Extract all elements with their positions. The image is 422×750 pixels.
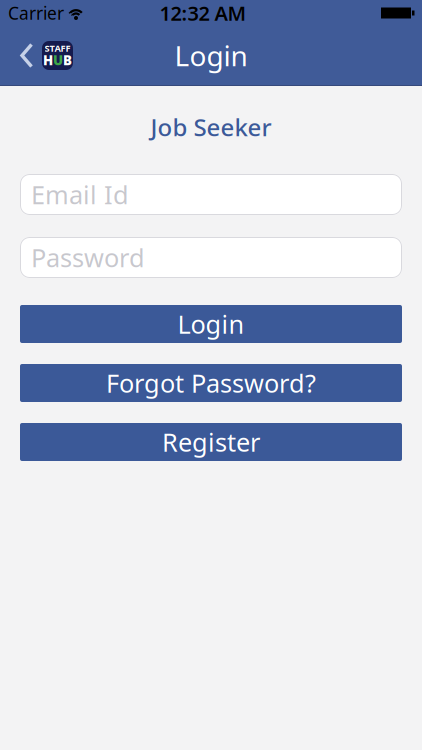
staticText: Register — [162, 425, 260, 459]
staticText: B — [63, 51, 72, 69]
staticText: H — [43, 51, 53, 69]
button[interactable]: STAFF — [0, 41, 73, 70]
staticText: Forgot Password? — [106, 366, 316, 400]
staticText: Password — [31, 241, 145, 274]
staticText: Email Id — [31, 178, 129, 211]
button[interactable]: Email Id — [20, 174, 402, 215]
button[interactable]: Password — [20, 237, 402, 278]
staticText: 12:32 AM — [159, 0, 246, 26]
button[interactable]: Forgot Password? — [20, 364, 402, 402]
button[interactable]: Login — [20, 305, 402, 343]
staticText: Carrier — [8, 1, 64, 24]
staticText: U — [53, 51, 63, 69]
staticText: Login — [177, 307, 244, 341]
button[interactable]: Register — [20, 423, 402, 461]
staticText: STAFF — [44, 42, 70, 54]
staticText: Login — [174, 37, 247, 74]
staticText: Job Seeker — [150, 111, 271, 143]
